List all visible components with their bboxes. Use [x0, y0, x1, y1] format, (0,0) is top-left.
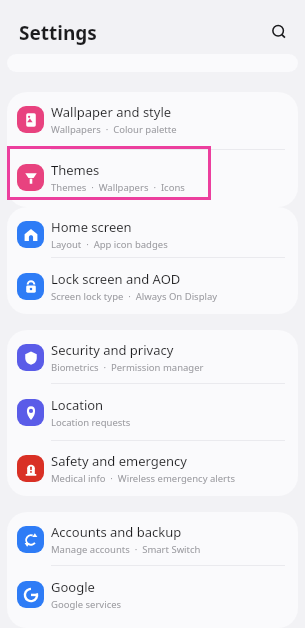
staticText: Wallpapers · Colour palette — [51, 123, 177, 136]
staticText: Google — [51, 578, 95, 596]
staticText: Settings — [19, 20, 97, 46]
staticText: Biometrics · Permission manager — [51, 361, 204, 374]
staticText: Wallpaper and style — [51, 103, 172, 121]
button[interactable]: Accounts and backup — [7, 512, 298, 566]
staticText: Accounts and backup — [51, 523, 182, 541]
button[interactable]: Home screen — [7, 207, 298, 261]
staticText: Themes — [51, 161, 100, 179]
staticText: Manage accounts · Smart Switch — [51, 543, 201, 556]
button[interactable]: Search — [266, 19, 292, 45]
staticText: Google services — [51, 598, 122, 611]
staticText: Security and privacy — [51, 341, 174, 359]
staticText: Location — [51, 396, 104, 414]
button[interactable]: Lock screen and AOD — [7, 259, 298, 313]
button[interactable]: Safety and emergency — [7, 441, 298, 495]
button[interactable]: Wallpaper and style — [7, 92, 298, 146]
staticText: Themes · Wallpapers · Icons — [51, 181, 185, 194]
button[interactable]: Security and privacy — [7, 330, 298, 384]
button[interactable]: Themes — [7, 150, 298, 204]
button[interactable]: Location — [7, 385, 298, 439]
staticText: Screen lock type · Always On Display — [51, 290, 218, 303]
staticText: Home screen — [51, 218, 132, 236]
staticText: Location requests — [51, 416, 131, 429]
staticText: Safety and emergency — [51, 452, 187, 470]
button[interactable]: Google — [7, 567, 298, 621]
staticText: Layout · App icon badges — [51, 238, 168, 251]
staticText: Medical info · Wireless emergency alerts — [51, 472, 236, 485]
staticText: Lock screen and AOD — [51, 270, 181, 288]
